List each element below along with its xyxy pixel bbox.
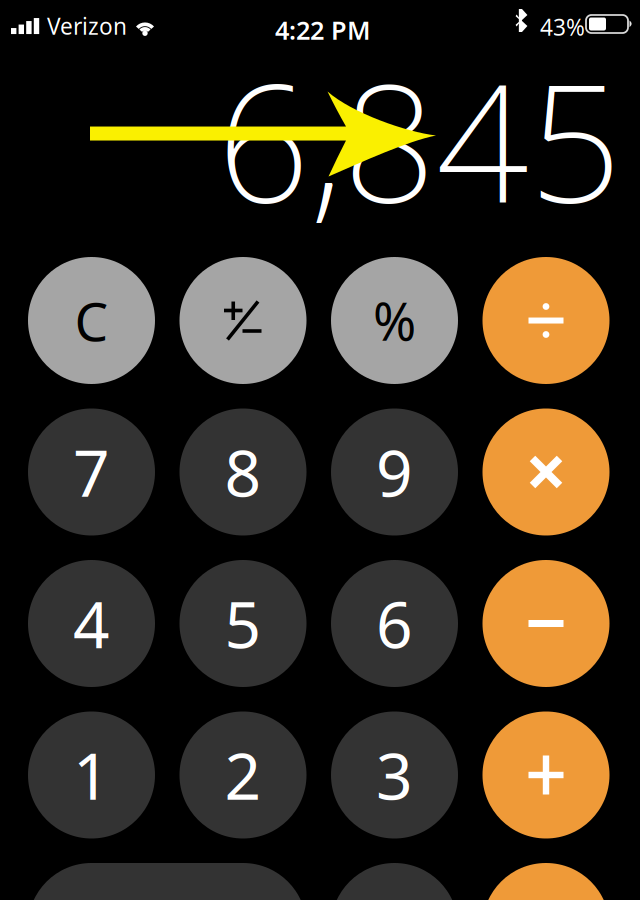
staticText: 9 xyxy=(376,429,413,514)
button[interactable]: Minus xyxy=(482,560,609,687)
staticText: 4:22 PM xyxy=(275,13,371,47)
button[interactable]: C xyxy=(28,257,155,384)
button[interactable]: 7 xyxy=(28,408,155,535)
button[interactable]: Plus xyxy=(482,711,609,838)
staticText: 7 xyxy=(73,429,110,514)
button[interactable]: 4 xyxy=(28,560,155,687)
button[interactable]: 0 xyxy=(28,863,306,900)
staticText: 4 xyxy=(73,581,110,666)
staticText: 5 xyxy=(224,581,261,666)
button[interactable]: 5 xyxy=(179,560,306,687)
staticText: 6 xyxy=(376,581,413,666)
button[interactable]: 3 xyxy=(331,711,458,838)
staticText: 1 xyxy=(73,732,110,817)
button[interactable]: Divide xyxy=(482,257,609,384)
staticText: 43% xyxy=(540,12,585,42)
button[interactable]: . xyxy=(331,863,458,900)
button[interactable]: Multiply xyxy=(482,408,609,535)
button[interactable]: Plus minus xyxy=(179,257,306,384)
staticText: C xyxy=(74,285,108,356)
staticText: 3 xyxy=(376,732,413,817)
staticText: % xyxy=(373,286,416,355)
button[interactable]: 9 xyxy=(331,408,458,535)
button[interactable]: % xyxy=(331,257,458,384)
staticText: 2 xyxy=(224,732,261,817)
staticText: 6,845 xyxy=(217,31,622,247)
button[interactable]: 1 xyxy=(28,711,155,838)
staticText: Verizon xyxy=(47,11,127,41)
button[interactable]: 6 xyxy=(331,560,458,687)
staticText: 8 xyxy=(224,429,261,514)
button[interactable]: = xyxy=(482,863,609,900)
button[interactable]: 2 xyxy=(179,711,306,838)
button[interactable]: 8 xyxy=(179,408,306,535)
